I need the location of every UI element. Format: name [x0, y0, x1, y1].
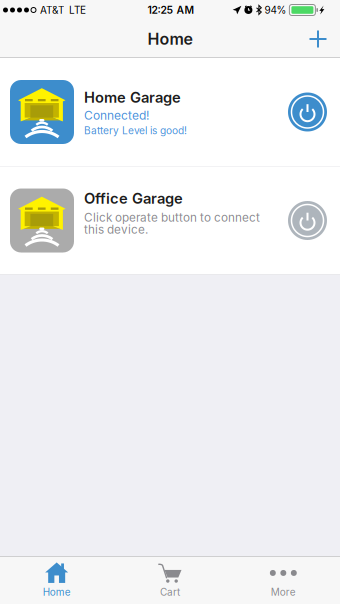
staticText: AT&T: [40, 4, 64, 16]
staticText: Home: [43, 586, 71, 598]
staticText: 12:25 AM: [147, 4, 194, 16]
staticText: Home Garage: [84, 88, 181, 106]
staticText: More: [271, 586, 296, 598]
button[interactable]: Add device: [296, 20, 340, 58]
staticText: Cart: [160, 586, 180, 598]
button[interactable]: More: [227, 556, 340, 604]
staticText: LTE: [69, 4, 86, 16]
button[interactable]: Home: [0, 556, 113, 604]
staticText: Click operate button to connect: [84, 210, 260, 225]
staticText: Office Garage: [84, 189, 183, 207]
button[interactable]: Office Garage: [0, 166, 340, 274]
staticText: Connected!: [84, 108, 149, 122]
button[interactable]: Cart: [113, 556, 227, 604]
staticText: Home: [147, 29, 192, 49]
staticText: 94%: [264, 4, 286, 16]
button[interactable]: Home Garage: [0, 58, 340, 166]
staticText: this device.: [84, 222, 148, 237]
staticText: Battery Level is good!: [84, 124, 187, 137]
